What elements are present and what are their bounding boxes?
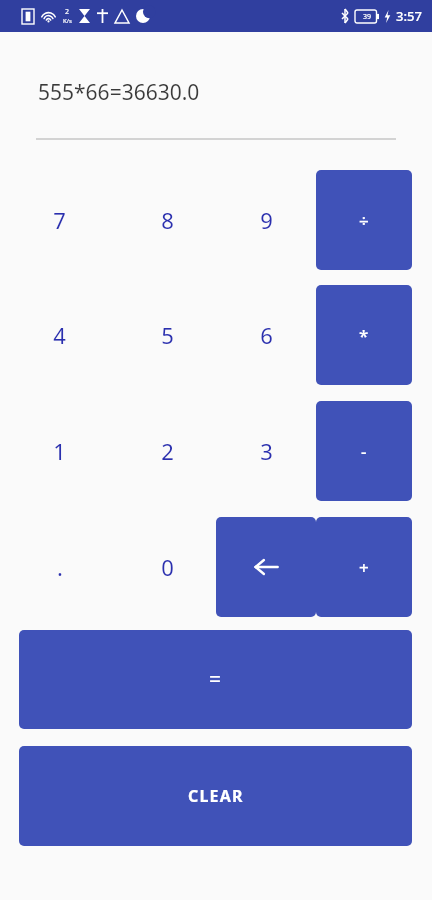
staticText: * [359, 324, 369, 347]
button[interactable]: * [316, 285, 412, 385]
staticText: 1 [53, 436, 66, 466]
button[interactable]: Backspace [216, 517, 316, 617]
staticText: = [209, 665, 222, 694]
button[interactable]: CLEAR [19, 746, 412, 846]
staticText: 6 [260, 320, 273, 350]
button[interactable]: 3 [216, 401, 316, 501]
button[interactable]: 7 [0, 170, 119, 270]
button[interactable]: 2 [119, 401, 216, 501]
button[interactable]: . [0, 517, 119, 617]
staticText: . [57, 552, 63, 582]
staticText: 3 [260, 436, 273, 466]
staticText: - [361, 440, 367, 463]
staticText: + [359, 556, 369, 579]
button[interactable]: + [316, 517, 412, 617]
button[interactable]: 1 [0, 401, 119, 501]
staticText: 2 [161, 436, 174, 466]
button[interactable]: = [19, 630, 412, 729]
staticText: 39 [363, 12, 372, 22]
staticText: CLEAR [188, 785, 244, 807]
staticText: 7 [53, 205, 66, 235]
staticText: 5 [161, 320, 174, 350]
button[interactable]: 6 [216, 285, 316, 385]
button[interactable]: 5 [119, 285, 216, 385]
button[interactable]: ÷ [316, 170, 412, 270]
button[interactable]: - [316, 401, 412, 501]
button[interactable]: 9 [216, 170, 316, 270]
staticText: 8 [161, 205, 174, 235]
staticText: 3:57 [396, 7, 422, 25]
staticText: 555*66=36630.0 [38, 78, 200, 107]
staticText: 9 [260, 205, 273, 235]
staticText: 2 [65, 7, 70, 17]
staticText: K/s [63, 17, 72, 25]
staticText: 0 [161, 552, 174, 582]
button[interactable]: 4 [0, 285, 119, 385]
button[interactable]: 8 [119, 170, 216, 270]
button[interactable]: 0 [119, 517, 216, 617]
staticText: ÷ [359, 209, 369, 232]
staticText: 4 [53, 320, 66, 350]
